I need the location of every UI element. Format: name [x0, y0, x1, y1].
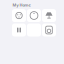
button[interactable] [42, 23, 56, 36]
staticText: My Home [12, 2, 30, 7]
button[interactable] [42, 9, 56, 22]
button[interactable] [12, 23, 26, 36]
button[interactable] [27, 9, 41, 22]
button[interactable] [12, 9, 26, 22]
